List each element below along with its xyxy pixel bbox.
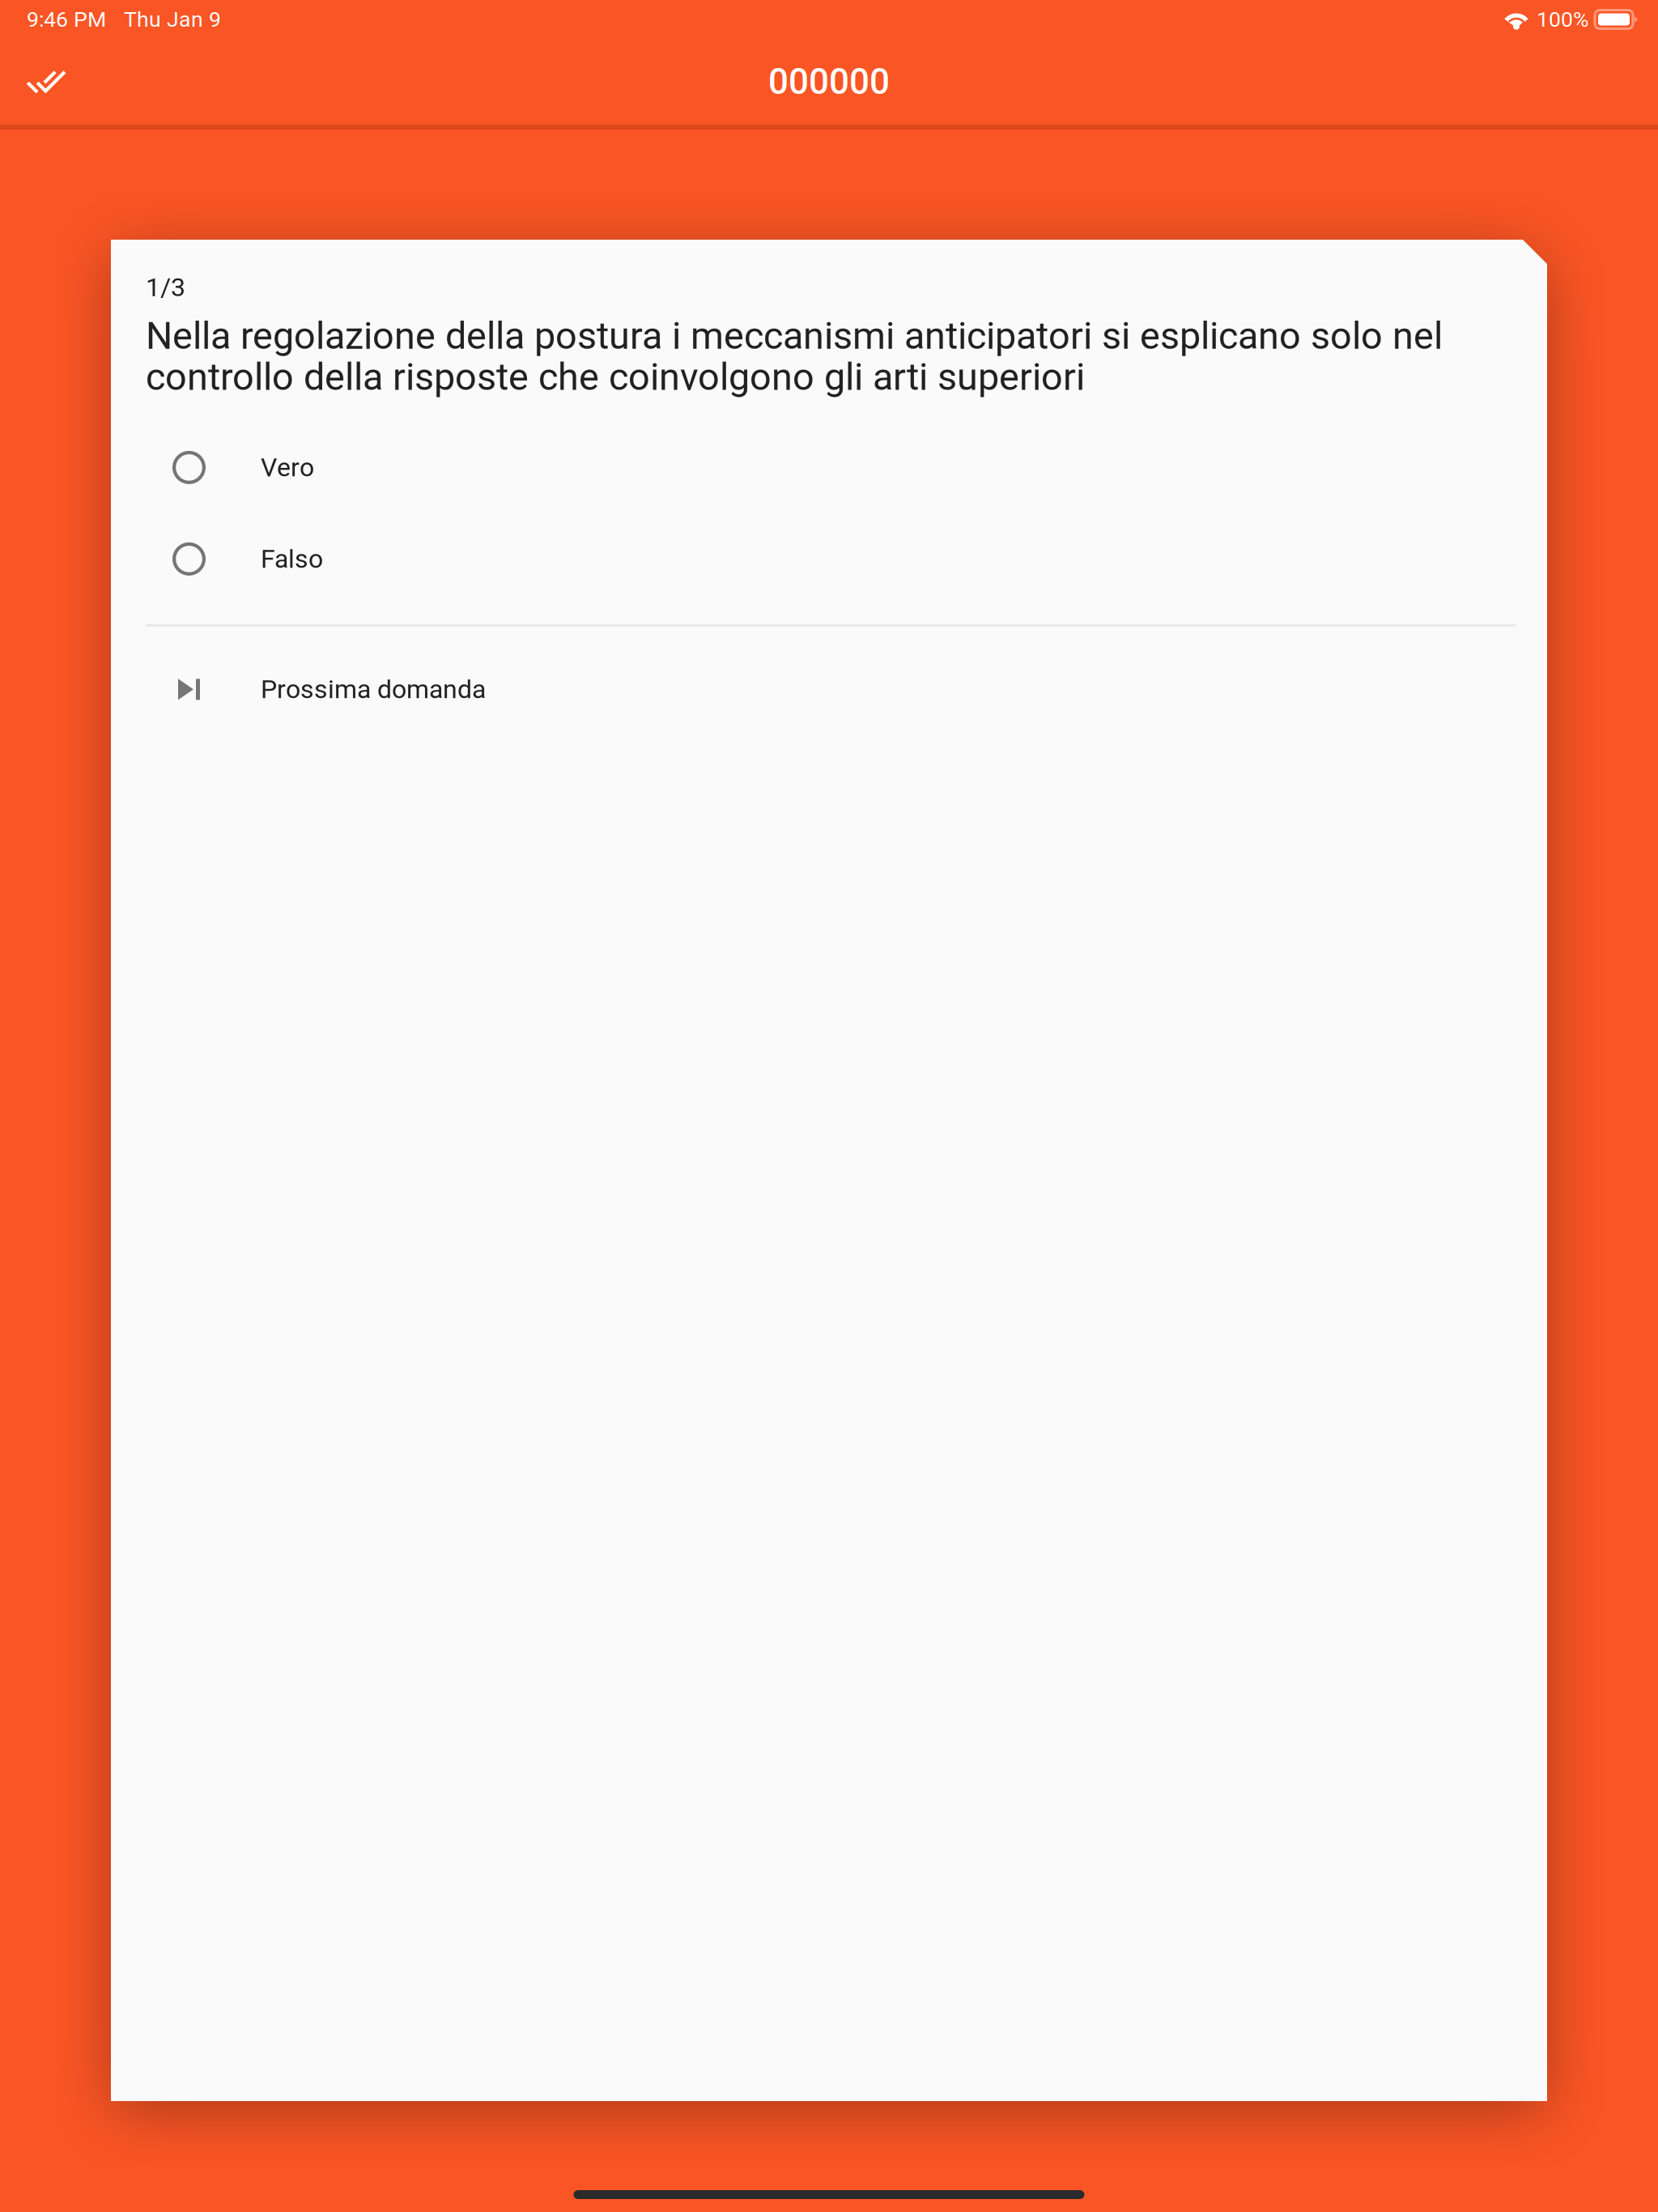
button[interactable]: Vero xyxy=(146,422,1516,513)
staticText: 100% xyxy=(1537,7,1589,32)
staticText: Nella regolazione della postura i meccan… xyxy=(146,314,1443,399)
button[interactable]: Prossima domanda xyxy=(146,644,1516,735)
staticText: Falso xyxy=(261,544,323,574)
staticText: 1/3 xyxy=(146,272,185,302)
staticText: 000000 xyxy=(768,61,890,103)
staticText: Thu Jan 9 xyxy=(124,7,221,32)
staticText: Vero xyxy=(261,452,314,483)
staticText: Prossima domanda xyxy=(261,674,486,704)
button[interactable]: Mark all as read xyxy=(11,52,79,112)
button[interactable]: Falso xyxy=(146,513,1516,605)
staticText: 9:46 PM xyxy=(27,7,106,32)
